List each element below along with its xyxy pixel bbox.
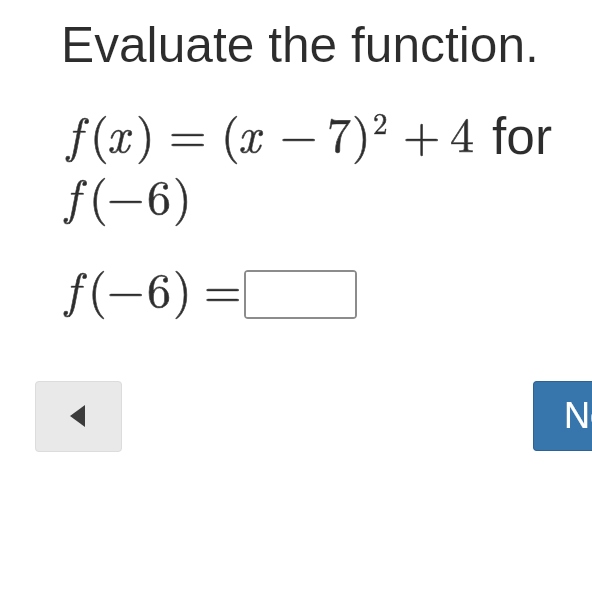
- staticText: ): [136, 98, 155, 166]
- staticText: (: [90, 98, 109, 166]
- staticText: 4: [450, 98, 475, 166]
- staticText: +: [403, 98, 441, 166]
- staticText: ): [352, 98, 371, 166]
- staticText: 6: [147, 253, 172, 321]
- staticText: 6: [147, 253, 172, 321]
- staticText: (: [88, 253, 107, 321]
- staticText: ): [173, 253, 192, 321]
- staticText: ): [136, 98, 155, 166]
- staticText: +: [403, 98, 441, 166]
- staticText: x: [107, 98, 130, 166]
- staticText: 2: [373, 101, 388, 142]
- staticText: =: [169, 98, 207, 166]
- staticText: Next: [564, 395, 592, 435]
- staticText: f: [67, 98, 82, 166]
- staticText: ): [173, 160, 192, 228]
- staticText: (: [89, 160, 108, 228]
- staticText: (: [89, 160, 108, 228]
- staticText: −: [280, 98, 318, 166]
- staticText: −: [107, 253, 145, 321]
- staticText: x: [238, 98, 261, 166]
- staticText: =: [204, 253, 242, 321]
- staticText: 2: [373, 101, 388, 142]
- staticText: 4: [450, 98, 475, 166]
- staticText: f: [65, 160, 80, 228]
- staticText: =: [204, 253, 242, 321]
- staticText: f: [65, 253, 80, 321]
- staticText: (: [88, 253, 107, 321]
- staticText: (: [221, 98, 240, 166]
- staticText: −: [107, 160, 145, 228]
- staticText: 6: [147, 160, 172, 228]
- staticText: 7: [327, 98, 352, 166]
- staticText: ): [173, 160, 192, 228]
- staticText: −: [280, 98, 318, 166]
- staticText: ): [352, 98, 371, 166]
- button[interactable]: Next: [533, 381, 592, 451]
- button[interactable]: Answer input: [244, 270, 357, 319]
- staticText: f: [65, 253, 80, 321]
- staticText: f: [67, 98, 82, 166]
- staticText: =: [169, 98, 207, 166]
- staticText: x: [238, 98, 261, 166]
- staticText: (: [90, 98, 109, 166]
- staticText: x: [107, 98, 130, 166]
- staticText: ): [173, 253, 192, 321]
- staticText: f: [65, 160, 80, 228]
- staticText: for: [492, 107, 553, 165]
- staticText: 6: [147, 160, 172, 228]
- staticText: Evaluate the function.: [61, 17, 539, 73]
- staticText: −: [107, 160, 145, 228]
- button[interactable]: Previous question: [35, 381, 122, 452]
- staticText: (: [221, 98, 240, 166]
- staticText: 7: [327, 98, 352, 166]
- staticText: −: [107, 253, 145, 321]
